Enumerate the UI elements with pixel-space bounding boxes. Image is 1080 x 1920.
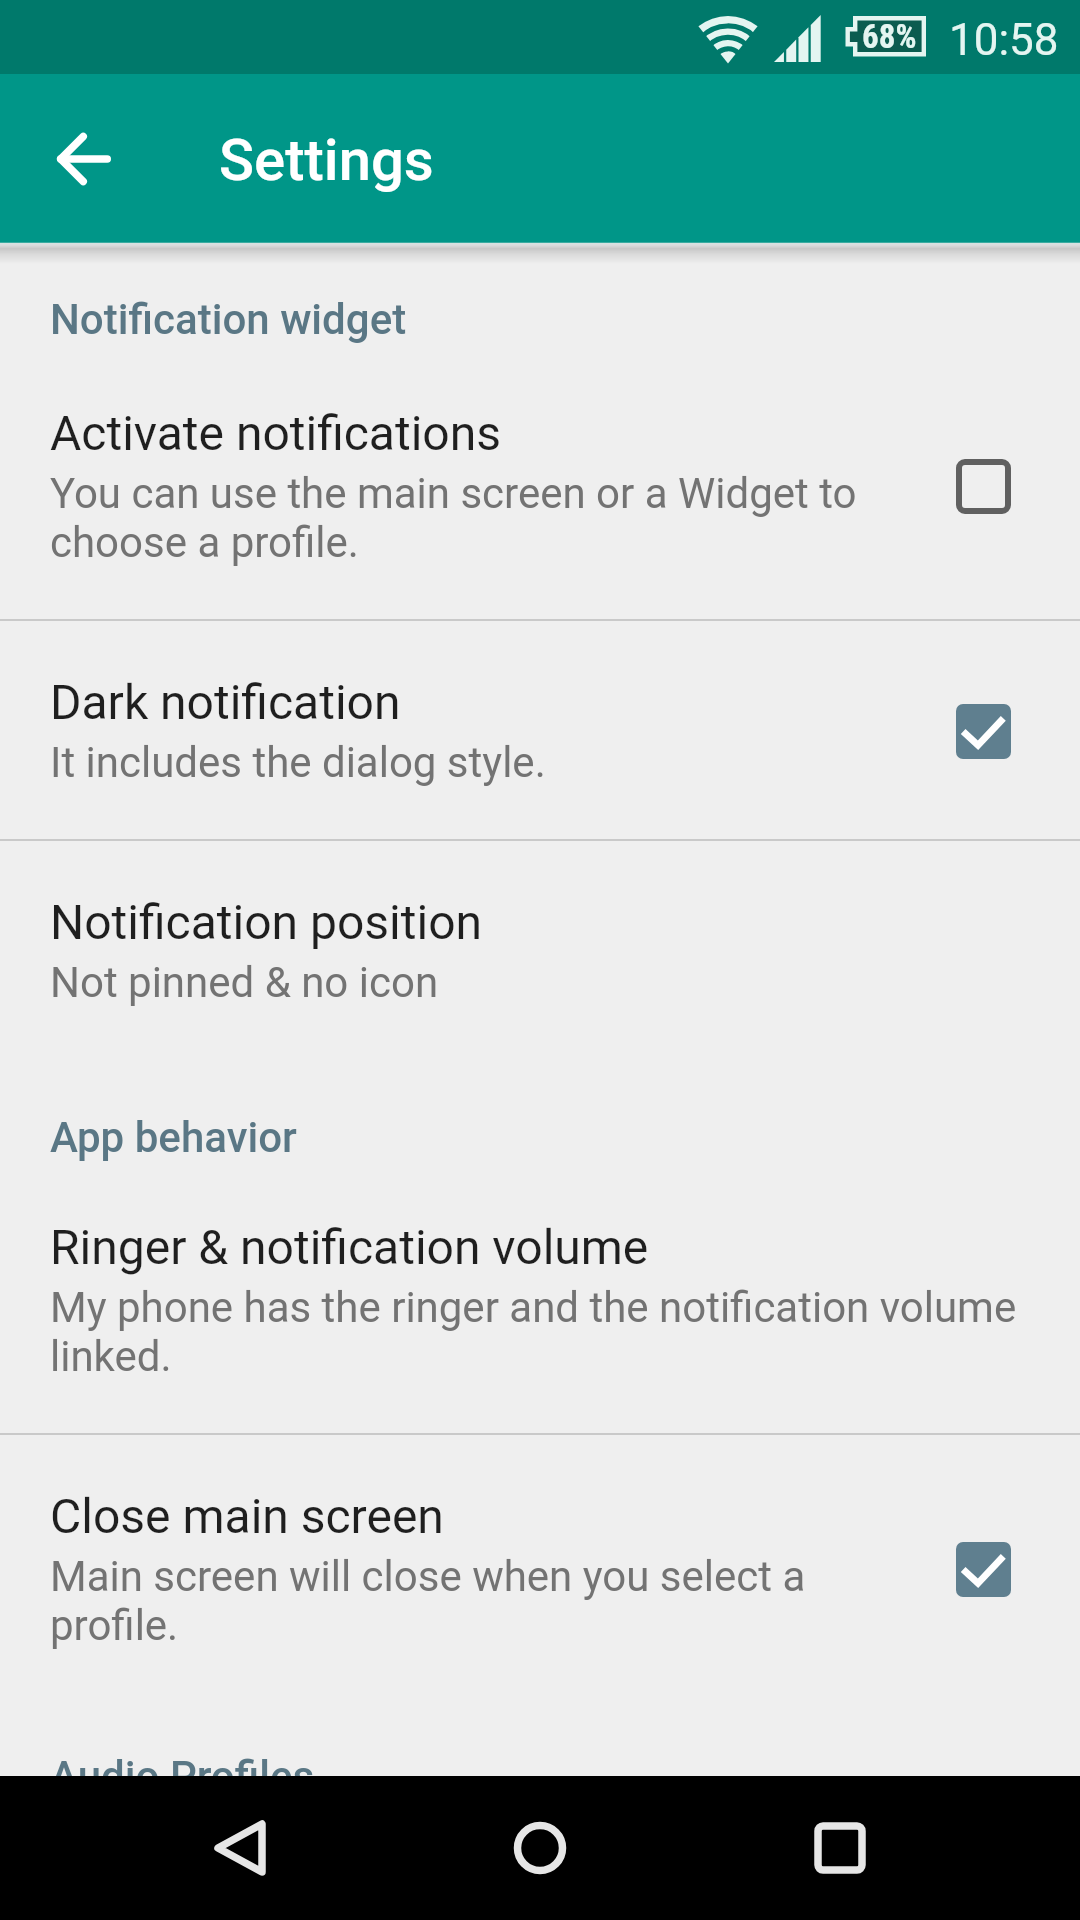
staticText: Dark notification <box>50 674 401 730</box>
staticText: My phone has the ringer and the notifica… <box>50 1283 1058 1381</box>
staticText: Not pinned & no icon <box>50 958 439 1007</box>
staticText: Audio Profiles <box>50 1752 315 1801</box>
button[interactable]: Checked <box>908 1514 1058 1624</box>
staticText: 68% <box>862 17 917 56</box>
staticText: Close main screen <box>50 1488 444 1544</box>
button[interactable]: Back <box>150 1776 330 1920</box>
staticText: 10:58 <box>949 14 1059 66</box>
staticText: Notification position <box>50 894 483 950</box>
staticText: Main screen will close when you select a… <box>50 1552 908 1650</box>
button[interactable]: Checked <box>908 676 1058 786</box>
button[interactable]: Back <box>22 97 146 221</box>
button[interactable]: Recents <box>750 1776 930 1920</box>
button[interactable]: Notification position <box>0 841 1080 1059</box>
staticText: You can use the main screen or a Widget … <box>50 469 908 567</box>
staticText: App behavior <box>50 1113 297 1162</box>
button[interactable]: Dark notification <box>0 621 1080 839</box>
staticText: Ringer & notification volume <box>50 1219 649 1275</box>
button[interactable]: Ringer & notification volume <box>0 1166 1080 1433</box>
staticText: Notification widget <box>50 295 407 344</box>
staticText: Settings <box>219 126 434 194</box>
button[interactable]: Unchecked <box>908 431 1058 541</box>
button[interactable]: Home <box>450 1776 630 1920</box>
button[interactable]: Activate notifications <box>0 352 1080 619</box>
button[interactable]: Close main screen <box>0 1435 1080 1702</box>
staticText: It includes the dialog style. <box>50 738 546 787</box>
staticText: Activate notifications <box>50 405 502 461</box>
